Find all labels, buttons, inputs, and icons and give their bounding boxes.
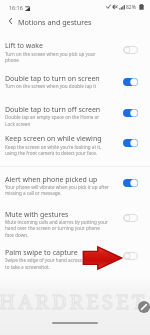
- staticText: using the front camera to detect your fa…: [5, 150, 98, 156]
- button[interactable]: [0, 243, 150, 274]
- staticText: Alert when phone picked up: [5, 175, 98, 185]
- staticText: Palm swipe to capture: [5, 248, 78, 258]
- button[interactable]: [0, 205, 150, 242]
- button[interactable]: Switch off: [123, 46, 138, 54]
- button[interactable]: [0, 100, 150, 131]
- staticText: Double tap to turn on screen: [5, 74, 100, 84]
- button[interactable]: [0, 37, 150, 68]
- button[interactable]: Switch off: [123, 214, 138, 222]
- button[interactable]: [0, 130, 150, 161]
- button[interactable]: Edit: [138, 301, 150, 313]
- staticText: missing a call or message.: [5, 190, 62, 196]
- staticText: Motions and gestures: [18, 17, 92, 27]
- staticText: face down.: [5, 232, 29, 238]
- staticText: Double tap an empty space on the Home or: [5, 114, 100, 120]
- button[interactable]: Switch off: [123, 252, 138, 260]
- button[interactable]: Switch on: [123, 109, 138, 117]
- staticText: Lift to wake: [5, 41, 43, 51]
- button[interactable]: [0, 69, 150, 93]
- staticText: Mute incoming calls and alarms by puttin…: [5, 219, 108, 225]
- staticText: to take a screenshot.: [5, 264, 50, 270]
- button[interactable]: Navigate up: [3, 14, 17, 28]
- staticText: Keep the screen on while you're looking …: [5, 144, 102, 150]
- staticText: phone: [5, 57, 19, 63]
- staticText: Turn on the screen when you double tap i…: [5, 83, 97, 89]
- staticText: Double tap to turn off screen: [5, 105, 101, 115]
- staticText: 82%: [126, 4, 136, 11]
- staticText: Keep screen on while viewing: [5, 134, 102, 144]
- staticText: Mute with gestures: [5, 210, 69, 220]
- staticText: HARDRESET: [0, 288, 148, 315]
- staticText: 16:16: [9, 4, 23, 11]
- staticText: Your phone will vibrate when you pick it…: [5, 184, 109, 190]
- staticText: hand over the screen or turning your pho…: [5, 225, 100, 231]
- staticText: Lock screen: [5, 121, 31, 127]
- button[interactable]: Switch on: [123, 179, 138, 187]
- staticText: Swipe the edge of your hand across the s…: [5, 257, 106, 263]
- button[interactable]: Switch on: [123, 78, 138, 86]
- staticText: Turn on the screen when you pick up your: [5, 51, 96, 57]
- button[interactable]: Switch on: [123, 139, 138, 147]
- button[interactable]: [0, 170, 150, 201]
